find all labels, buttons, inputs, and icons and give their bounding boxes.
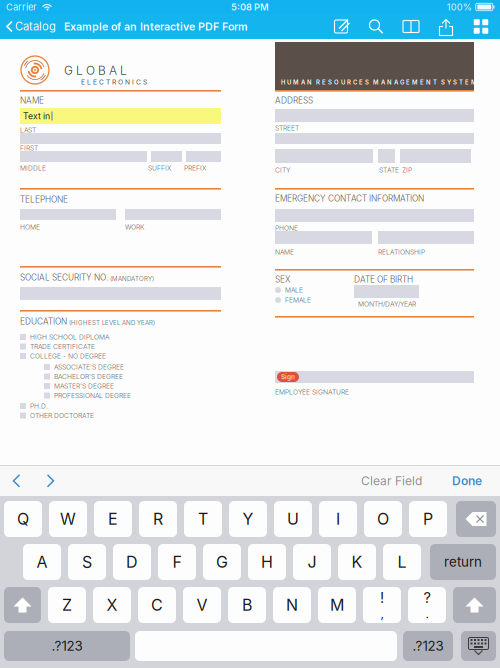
staticText: G	[216, 552, 228, 572]
button[interactable]: B	[228, 587, 266, 623]
staticText: H	[261, 552, 273, 572]
staticText: BACHELOR'S DEGREE	[54, 372, 123, 381]
button[interactable]: Done	[444, 466, 490, 496]
button[interactable]: Thumbnails	[466, 14, 496, 39]
staticText: return	[444, 554, 482, 570]
staticText: FIRST	[20, 144, 38, 152]
button[interactable]: T	[184, 501, 222, 537]
button[interactable]: Clear Field	[353, 466, 430, 496]
button[interactable]: E	[94, 501, 132, 537]
button[interactable]: L	[383, 544, 421, 580]
button[interactable]: !	[363, 587, 401, 623]
button[interactable]: C	[138, 587, 176, 623]
button[interactable]: Search	[361, 14, 391, 39]
button[interactable]: ?	[408, 587, 446, 623]
staticText: Q	[17, 509, 29, 529]
button[interactable]: Hide keyboard	[461, 631, 496, 661]
button[interactable]: X	[93, 587, 131, 623]
staticText: Clear Field	[361, 474, 422, 488]
button[interactable]: Catalog	[0, 14, 60, 39]
staticText: LAST	[20, 126, 36, 134]
staticText: Sign	[281, 373, 295, 381]
staticText: TRADE CERTIFICATE	[30, 342, 95, 351]
button[interactable]: U	[274, 501, 312, 537]
button[interactable]: A	[23, 544, 61, 580]
staticText: .?123	[412, 638, 443, 654]
button[interactable]: K	[338, 544, 376, 580]
staticText: R	[153, 509, 163, 529]
staticText: X	[106, 595, 117, 615]
staticText: N	[286, 595, 298, 615]
staticText: HIGH SCHOOL DIPLOMA	[30, 333, 109, 341]
staticText: !	[380, 589, 384, 607]
staticText: S	[82, 552, 92, 572]
button[interactable]: M	[318, 587, 356, 623]
staticText: MASTER'S DEGREE	[54, 382, 114, 390]
staticText: DATE OF BIRTH	[354, 274, 413, 284]
staticText: W	[60, 509, 76, 529]
staticText: ZIP	[402, 166, 412, 174]
staticText: .?123	[51, 638, 82, 654]
button[interactable]: W	[49, 501, 87, 537]
button[interactable]: return	[430, 544, 496, 580]
staticText: ,	[380, 607, 383, 621]
button[interactable]: R	[139, 501, 177, 537]
staticText: K	[351, 552, 362, 572]
staticText: STATE	[379, 166, 399, 174]
button[interactable]: Z	[48, 587, 86, 623]
staticText: PH.D.	[30, 402, 48, 410]
button[interactable]: P	[409, 501, 447, 537]
staticText: SEX	[275, 274, 290, 284]
staticText: MIDDLE	[20, 164, 46, 172]
button[interactable]: Shift	[453, 587, 496, 623]
staticText: T	[198, 509, 208, 529]
staticText: STREET	[275, 124, 299, 132]
button[interactable]: H	[248, 544, 286, 580]
button[interactable]: .?123	[403, 631, 453, 661]
staticText: PREFIX	[184, 164, 206, 172]
button[interactable]: J	[293, 544, 331, 580]
staticText: COLLEGE - NO DEGREE	[30, 352, 106, 360]
button[interactable]: I	[319, 501, 357, 537]
staticText: FEMALE	[285, 296, 311, 304]
staticText: Y	[242, 509, 253, 529]
staticText: 100%	[447, 1, 472, 13]
button[interactable]: Next field	[34, 466, 68, 496]
staticText: SOCIAL SECURITY NO.	[20, 272, 108, 282]
staticText: .	[425, 607, 428, 621]
button[interactable]: Page view	[396, 14, 426, 39]
staticText: Catalog	[15, 20, 56, 33]
button[interactable]: D	[113, 544, 151, 580]
staticText: CITY	[275, 166, 290, 174]
staticText: NAME	[20, 95, 44, 105]
staticText: (HIGHEST LEVEL AND YEAR)	[69, 319, 155, 326]
staticText: G L O B A L	[64, 63, 127, 77]
button[interactable]: Delete	[456, 501, 496, 537]
staticText: EMERGENCY CONTACT INFORMATION	[275, 193, 424, 203]
button[interactable]: Sign	[277, 372, 299, 382]
staticText: OTHER DOCTORATE	[30, 411, 94, 420]
staticText: PHONE	[275, 224, 298, 232]
staticText: I	[336, 509, 340, 529]
button[interactable]: O	[364, 501, 402, 537]
button[interactable]: V	[183, 587, 221, 623]
button[interactable]: Q	[4, 501, 42, 537]
button[interactable]: Annotate	[326, 14, 356, 39]
button[interactable]: N	[273, 587, 311, 623]
button[interactable]: Share	[431, 14, 461, 39]
button[interactable]: G	[203, 544, 241, 580]
button[interactable]: Previous field	[0, 466, 34, 496]
button[interactable]: F	[158, 544, 196, 580]
staticText: RELATIONSHIP	[378, 248, 425, 256]
button[interactable]: .?123	[4, 631, 130, 661]
staticText: V	[196, 595, 207, 615]
button[interactable]: Shift	[4, 587, 41, 623]
button[interactable]: S	[68, 544, 106, 580]
staticText: F	[172, 552, 181, 572]
staticText: U	[287, 509, 299, 529]
staticText: Z	[62, 595, 72, 615]
button[interactable]: Y	[229, 501, 267, 537]
staticText: NAME	[275, 248, 294, 256]
